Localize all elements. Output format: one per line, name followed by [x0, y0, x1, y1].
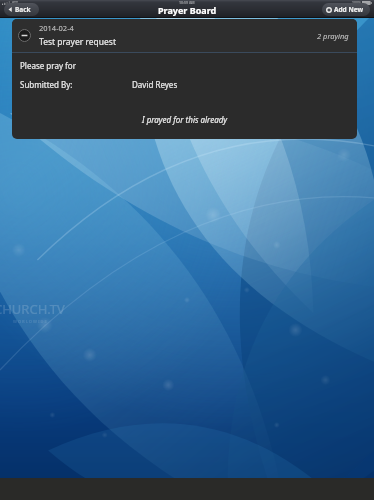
staticText: Submitted By:	[20, 79, 73, 90]
staticText: ATT	[12, 0, 18, 5]
staticText: 10:59 AM	[179, 0, 195, 5]
button[interactable]: I prayed for this already	[20, 112, 349, 127]
staticText: Back	[15, 5, 31, 14]
staticText: 2014-02-4	[39, 23, 74, 33]
staticText: Test prayer request	[39, 36, 117, 48]
staticText: W O R L D W I D E	[13, 319, 47, 324]
button[interactable]: Collapse	[12, 19, 357, 52]
staticText: 100%	[352, 0, 361, 5]
staticText: CHURCH.TV	[0, 300, 65, 318]
staticText: David Reyes	[132, 79, 178, 90]
staticText: Add New	[334, 5, 364, 14]
button[interactable]: Add New	[322, 3, 370, 16]
staticText: 2 praying	[317, 31, 349, 41]
button[interactable]: Collapse	[18, 29, 31, 42]
staticText: Prayer Board	[158, 4, 217, 16]
button[interactable]: Back	[4, 3, 39, 16]
staticText: I prayed for this already	[142, 114, 228, 125]
staticText: Please pray for	[20, 60, 76, 71]
